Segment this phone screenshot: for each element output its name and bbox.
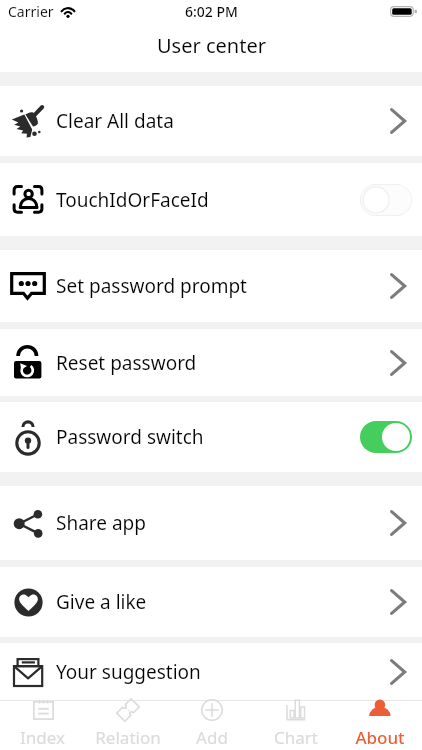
staticText: Password switch: [56, 424, 204, 450]
staticText: Share app: [56, 510, 146, 536]
staticText: TouchIdOrFaceId: [56, 187, 209, 213]
button[interactable]: Clear All data: [0, 86, 422, 156]
button[interactable]: Give a like: [0, 567, 422, 637]
button[interactable]: TouchIdOrFaceId: [0, 163, 422, 236]
staticText: Carrier: [8, 2, 54, 21]
button[interactable]: Share app: [0, 486, 422, 560]
button[interactable]: About: [338, 699, 422, 748]
staticText: Chart: [274, 726, 318, 748]
staticText: User center: [157, 32, 266, 59]
button[interactable]: Password switch: [0, 402, 422, 472]
button[interactable]: Index: [0, 699, 85, 748]
button[interactable]: Switch on: [360, 421, 412, 453]
staticText: About: [355, 726, 405, 748]
staticText: Give a like: [56, 589, 147, 615]
staticText: Relation: [95, 726, 161, 748]
button[interactable]: Set password prompt: [0, 250, 422, 322]
button[interactable]: Add: [170, 699, 254, 748]
button[interactable]: Chart: [254, 699, 338, 748]
staticText: Index: [20, 726, 65, 748]
button[interactable]: Relation: [85, 699, 170, 748]
staticText: Clear All data: [56, 108, 174, 134]
staticText: Your suggestion: [56, 659, 201, 685]
staticText: Set password prompt: [56, 273, 247, 299]
button[interactable]: Switch off: [360, 184, 412, 216]
button[interactable]: Your suggestion: [0, 643, 422, 700]
button[interactable]: Reset password: [0, 329, 422, 396]
staticText: 6:02 PM: [185, 2, 238, 21]
staticText: Add: [196, 726, 228, 748]
staticText: Reset password: [56, 350, 197, 376]
